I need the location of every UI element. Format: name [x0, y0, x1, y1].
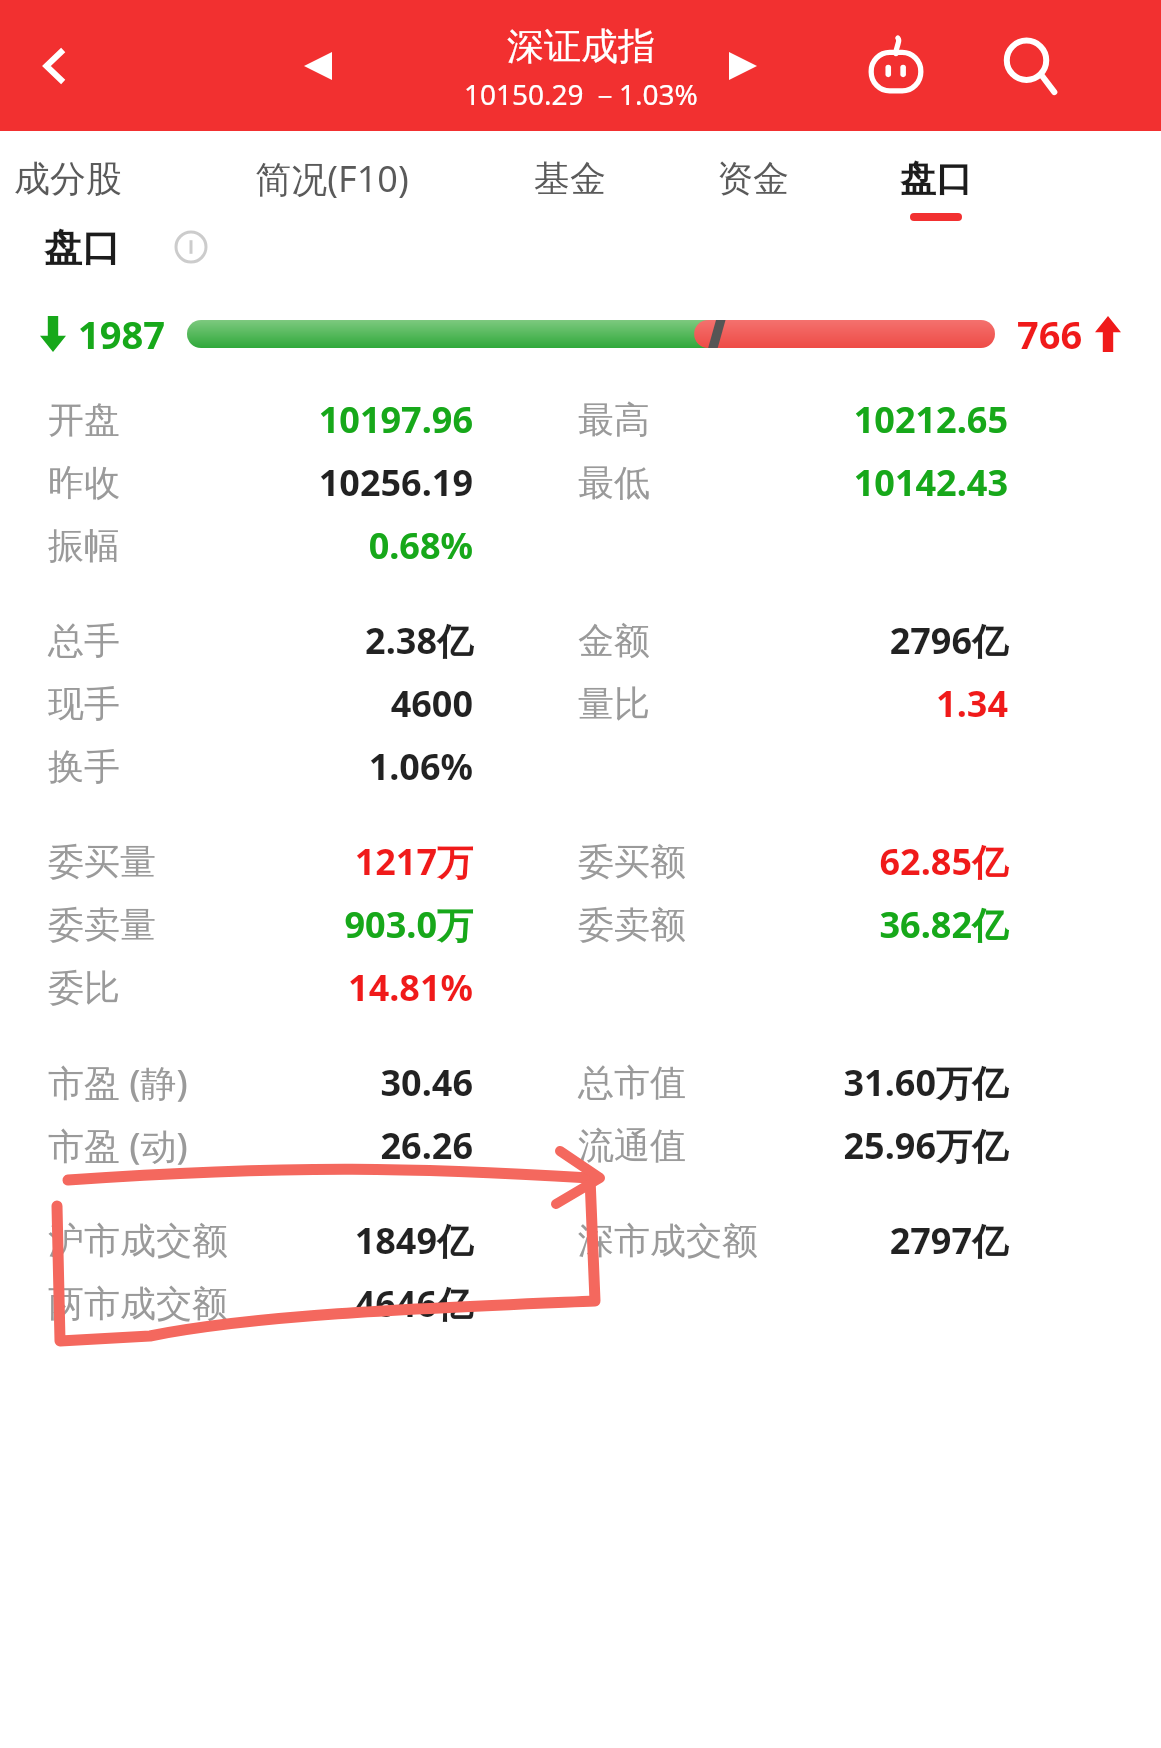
staticText: 10212.65: [853, 395, 1008, 444]
staticText: 现手: [48, 681, 120, 726]
staticText: 766: [1017, 308, 1083, 360]
button[interactable]: Previous: [282, 30, 354, 102]
button[interactable]: 开盘: [0, 388, 1161, 451]
staticText: 流通值: [578, 1123, 686, 1168]
staticText: 市盈 (静): [48, 1058, 188, 1107]
staticText: 2796亿: [889, 616, 1008, 665]
staticText: 深证成指: [507, 23, 655, 70]
staticText: 成分股: [14, 156, 122, 201]
staticText: 2.38亿: [365, 616, 473, 665]
staticText: 1987: [78, 308, 165, 360]
staticText: 1.06%: [368, 742, 473, 791]
staticText: 开盘: [48, 397, 120, 442]
staticText: 基金: [534, 156, 606, 201]
button[interactable]: 委卖量: [0, 893, 1161, 956]
staticText: 振幅: [48, 523, 120, 568]
button[interactable]: 总手: [0, 609, 1161, 672]
staticText: 换手: [48, 744, 120, 789]
staticText: 10142.43: [853, 458, 1008, 507]
button[interactable]: AI assistant: [853, 23, 939, 109]
staticText: 盘口: [900, 156, 972, 201]
staticText: 委卖额: [578, 902, 686, 947]
button[interactable]: 沪市成交额: [0, 1209, 1161, 1272]
staticText: 903.0万: [344, 900, 473, 949]
staticText: 委买额: [578, 839, 686, 884]
staticText: 最高: [578, 397, 650, 442]
staticText: 1849亿: [354, 1216, 473, 1265]
button[interactable]: 换手: [0, 735, 1161, 798]
staticText: 4646亿: [354, 1279, 473, 1328]
staticText: 31.60万亿: [843, 1058, 1008, 1107]
staticText: 0.68%: [368, 521, 473, 570]
staticText: 委卖量: [48, 902, 156, 947]
staticText: 10150.29 －1.03%: [464, 75, 698, 113]
staticText: 委买量: [48, 839, 156, 884]
staticText: 26.26: [380, 1121, 473, 1170]
button[interactable]: 市盈 (动): [0, 1114, 1161, 1177]
staticText: 总市值: [578, 1060, 686, 1105]
staticText: 10197.96: [318, 395, 473, 444]
button[interactable]: 现手: [0, 672, 1161, 735]
button[interactable]: 市盈 (静): [0, 1051, 1161, 1114]
button[interactable]: 委比: [0, 956, 1161, 1019]
staticText: 总手: [48, 618, 120, 663]
staticText: 10256.19: [318, 458, 473, 507]
staticText: 深市成交额: [578, 1218, 758, 1263]
staticText: 资金: [717, 156, 789, 201]
button[interactable]: 盘口: [841, 131, 1031, 246]
button[interactable]: 基金: [475, 131, 665, 246]
button[interactable]: 昨收: [0, 451, 1161, 514]
staticText: 2797亿: [889, 1216, 1008, 1265]
staticText: 盘口: [44, 224, 120, 272]
staticText: 62.85亿: [879, 837, 1008, 886]
staticText: 1.34: [936, 679, 1008, 728]
staticText: 简况(F10): [255, 154, 409, 203]
staticText: 14.81%: [348, 963, 473, 1012]
button[interactable]: Search: [987, 23, 1073, 109]
staticText: 市盈 (动): [48, 1121, 188, 1170]
staticText: 两市成交额: [48, 1281, 228, 1326]
staticText: 36.82亿: [879, 900, 1008, 949]
button[interactable]: 资金: [658, 131, 848, 246]
button[interactable]: 成分股: [0, 131, 163, 246]
button[interactable]: 振幅: [0, 514, 1161, 577]
button[interactable]: Back: [20, 30, 92, 102]
staticText: 沪市成交额: [48, 1218, 228, 1263]
button[interactable]: 简况(F10): [237, 131, 427, 246]
staticText: 30.46: [380, 1058, 473, 1107]
staticText: 1217万: [354, 837, 473, 886]
staticText: 委比: [48, 965, 120, 1010]
staticText: 量比: [578, 681, 650, 726]
button[interactable]: 委买量: [0, 830, 1161, 893]
staticText: 4600: [390, 679, 473, 728]
staticText: 最低: [578, 460, 650, 505]
button[interactable]: Next: [707, 30, 779, 102]
staticText: 25.96万亿: [843, 1121, 1008, 1170]
staticText: 金额: [578, 618, 650, 663]
staticText: 昨收: [48, 460, 120, 505]
button[interactable]: 两市成交额: [0, 1272, 1161, 1335]
